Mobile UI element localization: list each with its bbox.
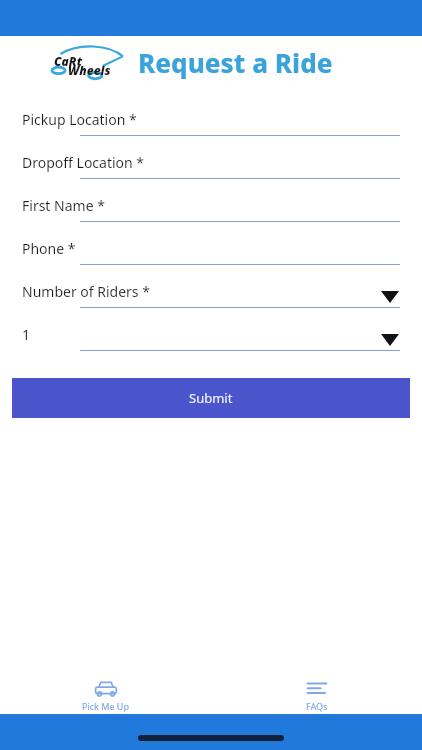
other: Open dropdown <box>381 334 399 346</box>
button[interactable]: Pickup Location * <box>0 108 422 151</box>
staticText: CaRt <box>54 53 83 69</box>
button[interactable]: Dropoff Location * <box>0 151 422 194</box>
button[interactable]: Number of Riders * <box>0 280 422 323</box>
staticText: Submit <box>189 389 233 407</box>
button[interactable]: Pick Me Up <box>0 674 211 712</box>
staticText: Number of Riders * <box>22 282 150 301</box>
staticText: Phone * <box>22 239 76 258</box>
staticText: FAQs <box>306 700 328 712</box>
button[interactable]: 1 <box>0 323 422 366</box>
staticText: 1 <box>22 325 31 344</box>
button[interactable]: Phone * <box>0 237 422 280</box>
button[interactable]: FAQs <box>211 674 422 712</box>
staticText: Dropoff Location * <box>22 153 145 172</box>
button[interactable]: First Name * <box>0 194 422 237</box>
staticText: Pick Me Up <box>82 700 129 712</box>
other: Pick Me Up <box>93 680 119 697</box>
staticText: Pickup Location * <box>22 110 137 129</box>
staticText: Wheels <box>68 62 111 78</box>
staticText: Request a Ride <box>138 45 333 80</box>
button[interactable]: Submit <box>12 378 410 418</box>
other: FAQs <box>304 680 330 697</box>
other: Open dropdown <box>381 291 399 303</box>
staticText: First Name * <box>22 196 105 215</box>
